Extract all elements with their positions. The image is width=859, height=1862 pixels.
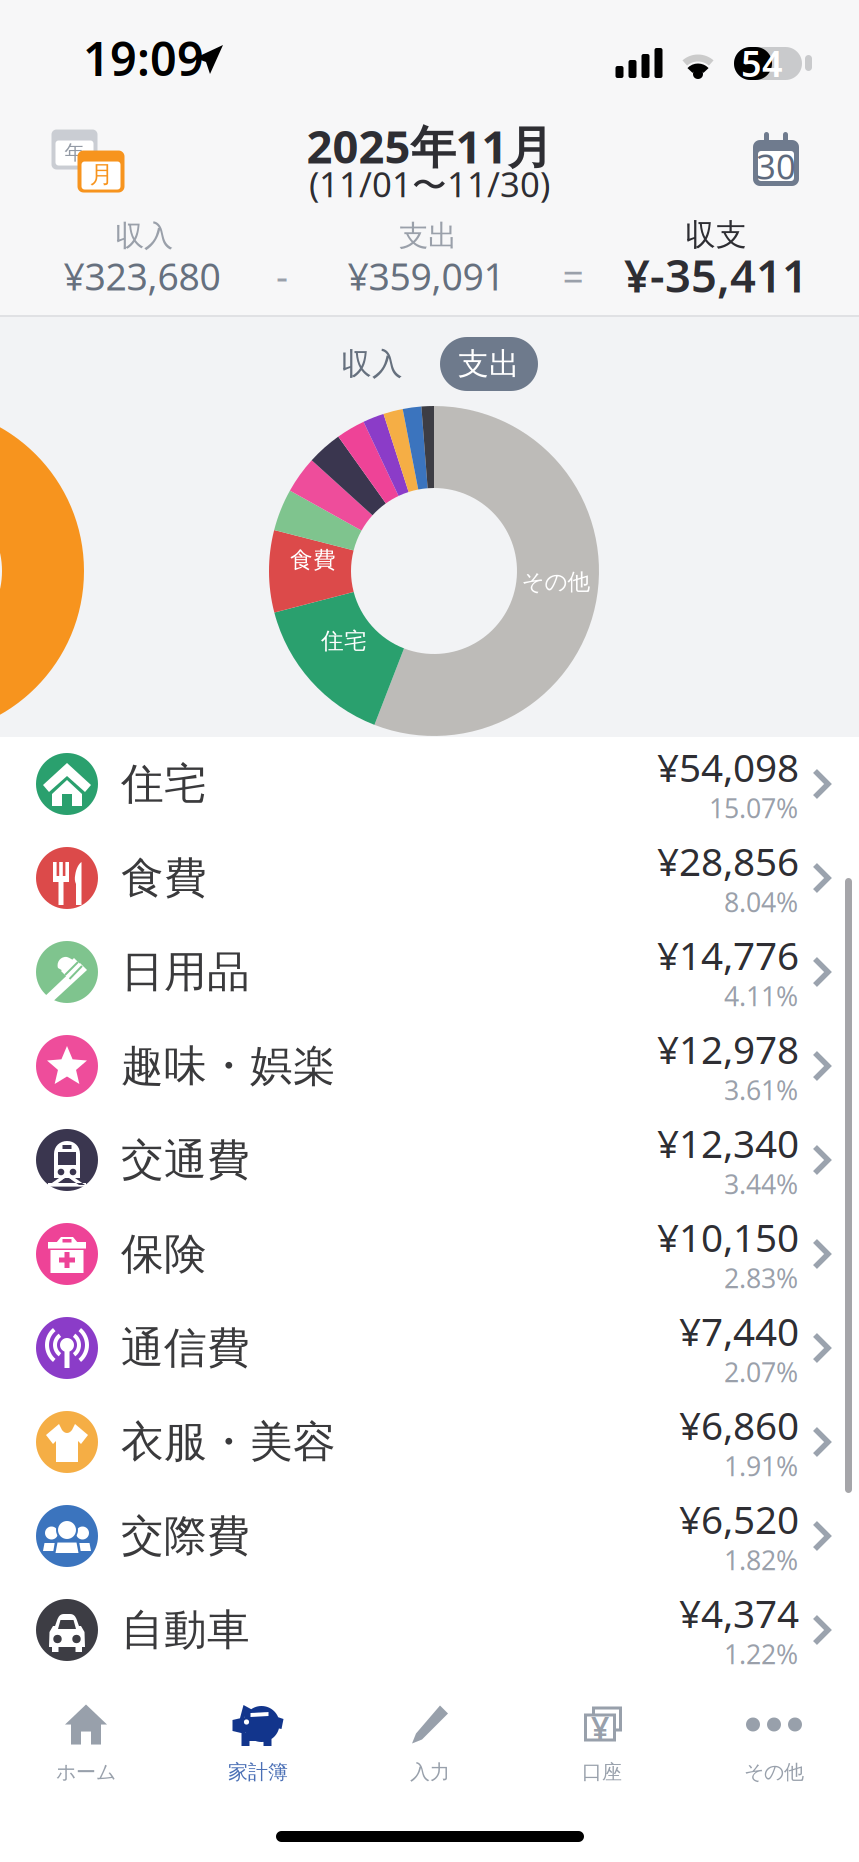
staticText: 通信費 bbox=[121, 1322, 250, 1374]
staticText: 口座 bbox=[582, 1760, 622, 1784]
staticText: 保険 bbox=[121, 1228, 207, 1280]
staticText: ¥12,340 bbox=[657, 1117, 799, 1169]
staticText: 1.82% bbox=[724, 1542, 798, 1578]
staticText: ¥323,680 bbox=[63, 251, 220, 301]
button[interactable]: 日用品 bbox=[0, 925, 859, 1019]
staticText: ¥4,374 bbox=[679, 1587, 799, 1639]
button[interactable]: 支出 bbox=[440, 337, 538, 391]
staticText: ¥10,150 bbox=[657, 1211, 799, 1263]
button[interactable]: 通信費 bbox=[0, 1301, 859, 1395]
staticText: 支出 bbox=[399, 218, 457, 254]
staticText: 1.91% bbox=[724, 1448, 798, 1484]
staticText: ¥54,098 bbox=[657, 741, 799, 793]
button[interactable]: 食費 bbox=[0, 831, 859, 925]
staticText: ¥ bbox=[591, 1706, 609, 1749]
staticText: 収入 bbox=[341, 345, 403, 383]
staticText: = bbox=[562, 251, 583, 301]
button[interactable]: 家計簿 bbox=[172, 1672, 344, 1862]
staticText: 2.07% bbox=[724, 1354, 798, 1390]
staticText: 家計簿 bbox=[228, 1760, 288, 1784]
staticText: 収支 bbox=[685, 216, 747, 254]
button[interactable]: 交際費 bbox=[0, 1489, 859, 1583]
staticText: ¥12,978 bbox=[657, 1023, 799, 1075]
staticText: ¥-35,411 bbox=[624, 245, 808, 305]
staticText: 3.61% bbox=[724, 1072, 798, 1108]
staticText: 2.83% bbox=[724, 1260, 798, 1296]
staticText: 15.07% bbox=[709, 790, 798, 826]
staticText: 4.11% bbox=[724, 978, 798, 1014]
staticText: 自動車 bbox=[121, 1604, 250, 1656]
button[interactable]: 交通費 bbox=[0, 1113, 859, 1207]
staticText: 54 bbox=[741, 39, 783, 87]
button[interactable]: カレンダー表示 bbox=[752, 131, 800, 189]
staticText: 住宅 bbox=[121, 758, 207, 810]
staticText: ¥359,091 bbox=[347, 251, 504, 301]
button[interactable]: 衣服・美容 bbox=[0, 1395, 859, 1489]
staticText: 支出 bbox=[458, 345, 520, 383]
staticText: 19:09 bbox=[83, 27, 204, 89]
button[interactable]: ¥ bbox=[516, 1672, 688, 1862]
staticText: 交際費 bbox=[121, 1510, 250, 1562]
staticText: その他 bbox=[521, 568, 590, 596]
staticText: 2025年11月 bbox=[306, 116, 552, 176]
staticText: 月 bbox=[89, 160, 113, 189]
staticText: ¥7,440 bbox=[679, 1305, 799, 1357]
staticText: 3.44% bbox=[724, 1166, 798, 1202]
button[interactable]: 収入 bbox=[322, 340, 422, 388]
staticText: 30 bbox=[756, 143, 796, 189]
staticText: 1.22% bbox=[724, 1636, 798, 1672]
staticText: 年 bbox=[64, 140, 84, 165]
staticText: ¥28,856 bbox=[657, 835, 799, 887]
staticText: ¥6,860 bbox=[679, 1399, 799, 1451]
button[interactable]: 趣味・娯楽 bbox=[0, 1019, 859, 1113]
staticText: ¥14,776 bbox=[657, 929, 799, 981]
staticText: ¥6,520 bbox=[679, 1493, 799, 1545]
button[interactable]: ホーム bbox=[0, 1672, 172, 1862]
staticText: 入力 bbox=[410, 1760, 450, 1784]
staticText: ホーム bbox=[56, 1760, 116, 1784]
button[interactable]: その他 bbox=[688, 1672, 859, 1862]
staticText: 日用品 bbox=[121, 946, 250, 998]
staticText: (11/01〜11/30) bbox=[309, 161, 550, 207]
staticText: - bbox=[276, 251, 288, 301]
button[interactable]: 保険 bbox=[0, 1207, 859, 1301]
staticText: 8.04% bbox=[724, 884, 798, 920]
staticText: 住宅 bbox=[321, 627, 367, 655]
staticText: 収入 bbox=[115, 218, 173, 254]
button[interactable]: 住宅 bbox=[0, 737, 859, 831]
staticText: その他 bbox=[744, 1760, 804, 1784]
staticText: 趣味・娯楽 bbox=[121, 1040, 336, 1092]
staticText: 食費 bbox=[121, 852, 207, 904]
button[interactable]: 年月切替 bbox=[50, 128, 126, 194]
staticText: 交通費 bbox=[121, 1134, 250, 1186]
button[interactable]: 入力 bbox=[344, 1672, 516, 1862]
button[interactable]: 自動車 bbox=[0, 1583, 859, 1677]
staticText: 衣服・美容 bbox=[121, 1416, 336, 1468]
staticText: 食費 bbox=[290, 546, 336, 574]
